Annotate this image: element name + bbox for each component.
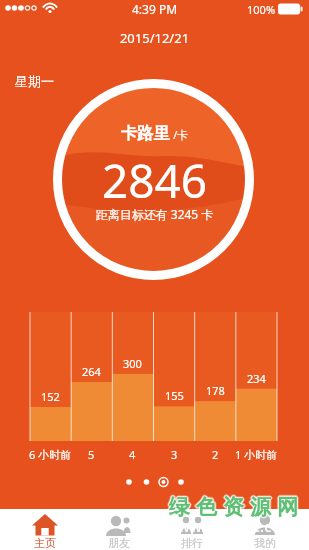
staticText: 3 xyxy=(171,447,178,462)
staticText: 绿色资源网 xyxy=(164,494,299,520)
staticText: 1 小时前 xyxy=(235,447,278,462)
staticText: 绿色资源网 xyxy=(165,494,300,520)
staticText: www.downcc.com xyxy=(166,516,295,536)
button[interactable]: 我的 xyxy=(228,509,301,550)
staticText: 5 xyxy=(88,447,95,462)
staticText: 绿色资源网 xyxy=(166,496,301,522)
staticText: 2 xyxy=(212,447,219,462)
staticText: 卡路里 /卡 xyxy=(0,123,309,144)
staticText: 264 xyxy=(82,364,101,379)
staticText: 2015/12/21 xyxy=(0,29,309,47)
staticText: 排行 xyxy=(181,536,203,550)
staticText: 绿色资源网 xyxy=(167,493,302,519)
staticText: 绿色资源网 xyxy=(166,493,301,519)
staticText: 距离目标还有 3245 卡 xyxy=(0,206,309,222)
staticText: 300 xyxy=(123,356,142,371)
staticText: 4:39 PM xyxy=(132,1,178,17)
staticText: 绿色资源网 xyxy=(166,492,301,518)
staticText: 绿色资源网 xyxy=(166,494,301,520)
staticText: 绿色资源网 xyxy=(168,494,303,520)
staticText: 主页 xyxy=(34,536,56,550)
staticText: 绿色资源网 xyxy=(165,493,300,519)
staticText: 234 xyxy=(247,371,266,386)
staticText: 152 xyxy=(41,389,60,404)
button[interactable]: 朋友 xyxy=(82,509,155,550)
staticText: 我的 xyxy=(254,536,276,550)
staticText: 星期一 xyxy=(15,73,54,89)
staticText: 178 xyxy=(206,383,225,398)
button[interactable]: 排行 xyxy=(155,509,228,550)
staticText: 绿色资源网 xyxy=(165,495,300,521)
staticText: 朋友 xyxy=(108,536,130,550)
staticText: 2846 xyxy=(0,149,309,212)
staticText: 绿色资源网 xyxy=(167,494,302,520)
staticText: 绿色资源网 xyxy=(166,495,301,521)
staticText: 100% xyxy=(247,2,276,17)
staticText: 绿色资源网 xyxy=(167,495,302,521)
button[interactable]: 主页 xyxy=(8,509,82,550)
staticText: 155 xyxy=(165,388,184,403)
staticText: 6 小时前 xyxy=(29,447,72,462)
staticText: 4 xyxy=(129,447,136,462)
